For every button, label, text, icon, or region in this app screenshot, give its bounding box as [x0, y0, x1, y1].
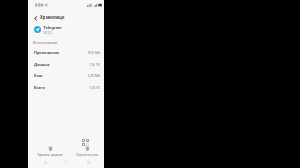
button[interactable]: Данные — [28, 59, 104, 70]
staticText: Использование — [33, 41, 58, 45]
staticText: Очистить кэш — [69, 153, 105, 157]
button[interactable]: Приложение — [28, 47, 104, 58]
button[interactable]: Recent apps — [83, 157, 93, 167]
button[interactable]: Back — [28, 12, 104, 23]
staticText: 83,6 МБ — [88, 51, 100, 55]
other: App shortcut — [82, 139, 91, 146]
staticText: Удалить данные — [32, 153, 68, 157]
staticText: Приложение — [34, 50, 60, 55]
staticText: Хранилище — [40, 15, 65, 20]
button[interactable]: Home — [61, 157, 71, 167]
staticText: 1,26 ГБ — [89, 63, 100, 67]
button[interactable]: Back — [32, 15, 38, 21]
staticText: Telegram — [43, 25, 62, 30]
staticText: 10.2.2 — [43, 31, 52, 35]
button[interactable]: Telegram — [28, 23, 104, 36]
button[interactable]: Удалить данные — [32, 146, 68, 160]
staticText: 6,20 МБ — [88, 74, 100, 78]
staticText: Кэш — [34, 73, 43, 78]
button[interactable]: Всего — [28, 82, 104, 93]
button[interactable]: Очистить кэш — [69, 146, 105, 160]
staticText: 1,34 ГБ — [89, 86, 100, 90]
button[interactable]: Back — [40, 157, 50, 167]
button[interactable]: Кэш — [28, 70, 104, 81]
staticText: Всего — [34, 85, 46, 90]
staticText: Данные — [34, 62, 50, 67]
